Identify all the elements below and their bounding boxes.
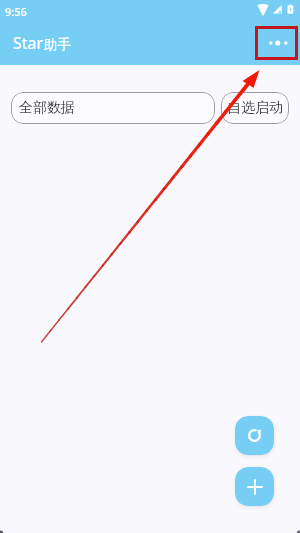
button[interactable]: 全部数据 [11, 92, 215, 124]
button[interactable]: Add [235, 467, 274, 506]
staticText: 9:56 [5, 4, 27, 19]
button[interactable]: More options [259, 26, 296, 60]
button[interactable]: Refresh [235, 416, 274, 455]
staticText: Star [13, 32, 44, 54]
button[interactable]: 自选启动 [221, 92, 289, 124]
staticText: 全部数据 [19, 99, 75, 117]
staticText: 助手 [44, 36, 71, 53]
staticText: 自选启动 [227, 99, 283, 117]
